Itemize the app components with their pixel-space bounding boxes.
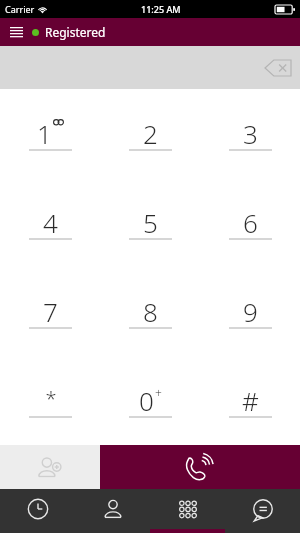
staticText: 3	[243, 116, 258, 146]
button[interactable]: Call	[100, 445, 300, 489]
staticText: 5	[143, 205, 158, 235]
button[interactable]: Dialpad	[150, 489, 225, 533]
button[interactable]: 6	[200, 178, 300, 267]
button[interactable]: Contacts	[75, 489, 150, 533]
button[interactable]: 7	[0, 267, 100, 356]
staticText: 6	[243, 205, 258, 235]
button[interactable]: Recents	[0, 489, 75, 533]
button[interactable]: 9	[200, 267, 300, 356]
staticText: *	[45, 385, 57, 412]
button[interactable]: Menu	[0, 18, 32, 46]
staticText: 7	[43, 294, 58, 324]
button[interactable]: 3	[200, 89, 300, 178]
button[interactable]: #	[200, 356, 300, 445]
staticText: Registered	[45, 24, 106, 40]
staticText: +	[155, 385, 162, 401]
staticText: 4	[43, 205, 58, 235]
button[interactable]: 2	[100, 89, 200, 178]
button[interactable]: 5	[100, 178, 200, 267]
staticText: #	[242, 383, 259, 413]
staticText: 8	[143, 294, 158, 324]
button[interactable]: Messages	[225, 489, 300, 533]
staticText: 0	[139, 383, 154, 413]
button[interactable]: 0	[100, 356, 200, 445]
staticText: 11:25 AM	[141, 3, 181, 15]
staticText: 2	[143, 116, 158, 146]
button[interactable]: 4	[0, 178, 100, 267]
button[interactable]: 8	[100, 267, 200, 356]
button[interactable]: Backspace	[262, 57, 294, 79]
button[interactable]: Add contact	[0, 445, 100, 489]
staticText: 1	[37, 116, 52, 146]
button[interactable]: 1	[0, 89, 100, 178]
button[interactable]: *	[0, 356, 100, 445]
staticText: 9	[243, 294, 258, 324]
staticText: Carrier	[5, 3, 35, 15]
